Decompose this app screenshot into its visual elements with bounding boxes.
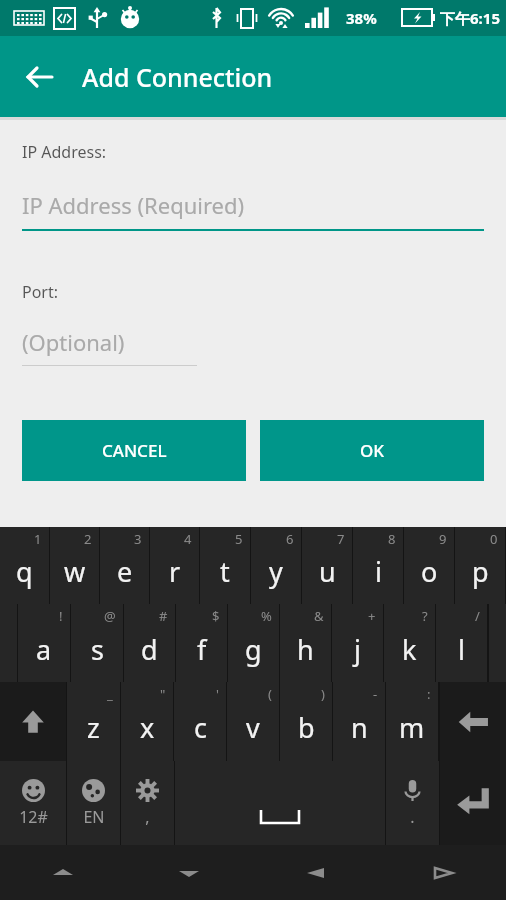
button[interactable]: CANCEL [22, 420, 246, 481]
button[interactable]: @ [71, 604, 123, 682]
button[interactable]: 5 [200, 527, 250, 604]
staticText: s [91, 631, 104, 668]
staticText: l [458, 631, 465, 668]
staticText: , [145, 806, 150, 828]
staticText: n [351, 709, 368, 746]
staticText: d [141, 631, 158, 668]
staticText: CANCEL [102, 439, 167, 462]
button[interactable]: Shift [0, 682, 66, 761]
button[interactable]: 4 [150, 527, 199, 604]
button[interactable]: 9 [404, 527, 454, 604]
staticText: Add Connection [82, 60, 273, 94]
button[interactable]: Back [14, 51, 66, 103]
button[interactable]: # [124, 604, 175, 682]
staticText: 12# [19, 806, 48, 828]
button[interactable]: Right [379, 845, 506, 900]
staticText: . [410, 806, 415, 828]
button[interactable]: Symbols [0, 761, 66, 845]
button[interactable]: 8 [353, 527, 403, 604]
staticText: ? [422, 607, 428, 625]
staticText: e [117, 553, 133, 590]
button[interactable]: Voice input [386, 761, 439, 845]
button[interactable]: Enter [440, 761, 506, 845]
button[interactable]: ( [227, 682, 279, 761]
button[interactable]: ' [174, 682, 226, 761]
button[interactable]: Backspace [440, 682, 506, 761]
staticText: u [319, 553, 336, 590]
staticText: Port: [22, 281, 59, 303]
staticText: _ [107, 685, 113, 703]
staticText: f [197, 631, 207, 668]
staticText: 38% [346, 8, 377, 28]
button[interactable]: $ [176, 604, 227, 682]
staticText: w [64, 553, 86, 590]
staticText: z [87, 709, 100, 746]
staticText: & [314, 607, 324, 625]
staticText: 6 [286, 530, 294, 548]
button[interactable]: 6 [251, 527, 301, 604]
staticText: 3 [134, 530, 142, 548]
staticText: ' [216, 685, 219, 703]
button[interactable]: 1 [0, 527, 49, 604]
staticText: / [475, 607, 480, 625]
button[interactable]: OK [260, 420, 484, 481]
staticText: 8 [388, 530, 396, 548]
staticText: a [36, 631, 52, 668]
button[interactable]: : [386, 682, 438, 761]
button[interactable]: 2 [50, 527, 99, 604]
button[interactable]: 0 [455, 527, 505, 604]
staticText: # [159, 607, 168, 625]
staticText: o [421, 553, 438, 590]
staticText: g [245, 631, 262, 668]
button[interactable]: Space [175, 761, 385, 845]
button[interactable]: / [436, 604, 487, 682]
staticText: k [402, 631, 417, 668]
staticText: ! [59, 607, 63, 625]
staticText: 4 [184, 530, 192, 548]
button[interactable]: Down [126, 845, 252, 900]
staticText: b [298, 709, 315, 746]
button[interactable]: ? [384, 604, 435, 682]
staticText: $ [212, 607, 220, 625]
staticText: ( [268, 685, 272, 703]
staticText: j [354, 631, 361, 668]
button[interactable]: Language [67, 761, 120, 845]
staticText: ) [321, 685, 325, 703]
staticText: v [246, 709, 260, 746]
button[interactable]: & [280, 604, 331, 682]
button[interactable]: 3 [100, 527, 149, 604]
button[interactable]: 7 [302, 527, 352, 604]
staticText: 下午6:15 [440, 8, 500, 28]
staticText: 2 [84, 530, 92, 548]
staticText: 1 [34, 530, 42, 548]
button[interactable]: _ [67, 682, 120, 761]
staticText: i [375, 553, 382, 590]
staticText: + [368, 607, 376, 625]
staticText: @ [104, 607, 116, 625]
button[interactable]: " [121, 682, 173, 761]
staticText: IP Address: [22, 141, 107, 163]
staticText: c [194, 709, 207, 746]
staticText: EN [83, 806, 105, 828]
button[interactable]: ! [18, 604, 70, 682]
button[interactable]: Settings [121, 761, 174, 845]
button[interactable]: Left [252, 845, 379, 900]
button[interactable]: (Optional) [22, 319, 506, 365]
staticText: OK [360, 439, 385, 462]
button[interactable]: IP Address (Required) [22, 181, 484, 229]
staticText: y [269, 553, 283, 590]
staticText: q [16, 553, 33, 590]
staticText: h [297, 631, 314, 668]
button[interactable]: + [332, 604, 383, 682]
button[interactable]: ) [280, 682, 332, 761]
button[interactable]: Up [0, 845, 126, 900]
button[interactable]: - [333, 682, 385, 761]
staticText: " [160, 685, 166, 703]
staticText: r [169, 553, 181, 590]
button[interactable]: % [228, 604, 279, 682]
staticText: : [427, 685, 431, 703]
staticText: m [399, 709, 425, 746]
staticText: - [373, 685, 378, 703]
